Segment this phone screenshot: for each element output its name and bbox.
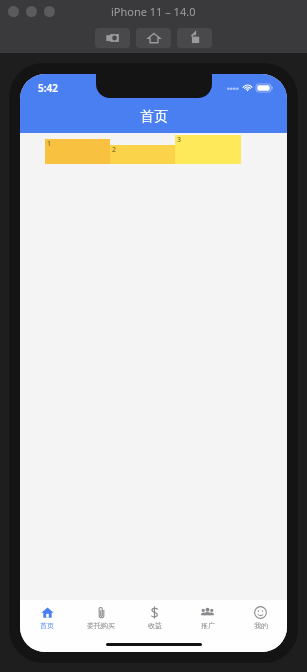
button[interactable]: Screenshot (95, 28, 130, 48)
staticText: 委托购买 (87, 621, 115, 630)
staticText: 首页 (40, 621, 54, 630)
button[interactable]: 首页 (20, 600, 74, 636)
staticText: 我的 (254, 621, 268, 630)
button[interactable]: 1 (45, 139, 110, 164)
button[interactable]: 收益 (128, 600, 181, 636)
button[interactable]: 推广 (181, 600, 234, 636)
staticText: iPhone 11 – 14.0 (111, 4, 196, 19)
button[interactable]: 我的 (234, 600, 287, 636)
staticText: 1 (47, 139, 52, 149)
staticText: 收益 (148, 621, 162, 630)
staticText: 首页 (140, 108, 168, 126)
staticText: 推广 (201, 621, 215, 630)
button[interactable]: 委托购买 (74, 600, 128, 636)
staticText: 2 (112, 145, 117, 155)
button[interactable]: Home (136, 28, 171, 48)
button[interactable]: Rotate (177, 28, 212, 48)
staticText: 3 (177, 135, 182, 145)
button[interactable]: 3 (175, 135, 241, 164)
button[interactable]: 2 (110, 145, 175, 164)
staticText: 5:42 (38, 81, 58, 95)
